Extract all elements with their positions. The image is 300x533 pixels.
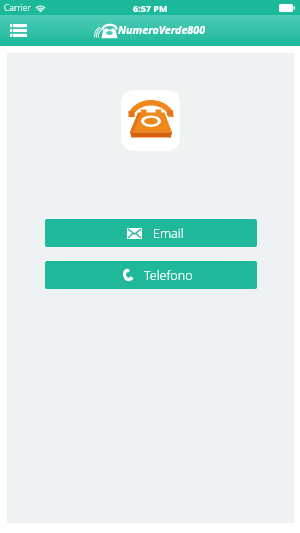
staticText: 6:57 PM <box>133 2 168 14</box>
staticText: Email <box>153 225 184 242</box>
button[interactable]: Menu <box>6 19 30 43</box>
staticText: NumeroVerde800 <box>118 23 206 38</box>
button[interactable]: Email <box>45 219 257 247</box>
button[interactable]: Telefono <box>45 261 257 289</box>
staticText: Carrier <box>4 2 31 14</box>
staticText: Telefono <box>144 267 193 284</box>
